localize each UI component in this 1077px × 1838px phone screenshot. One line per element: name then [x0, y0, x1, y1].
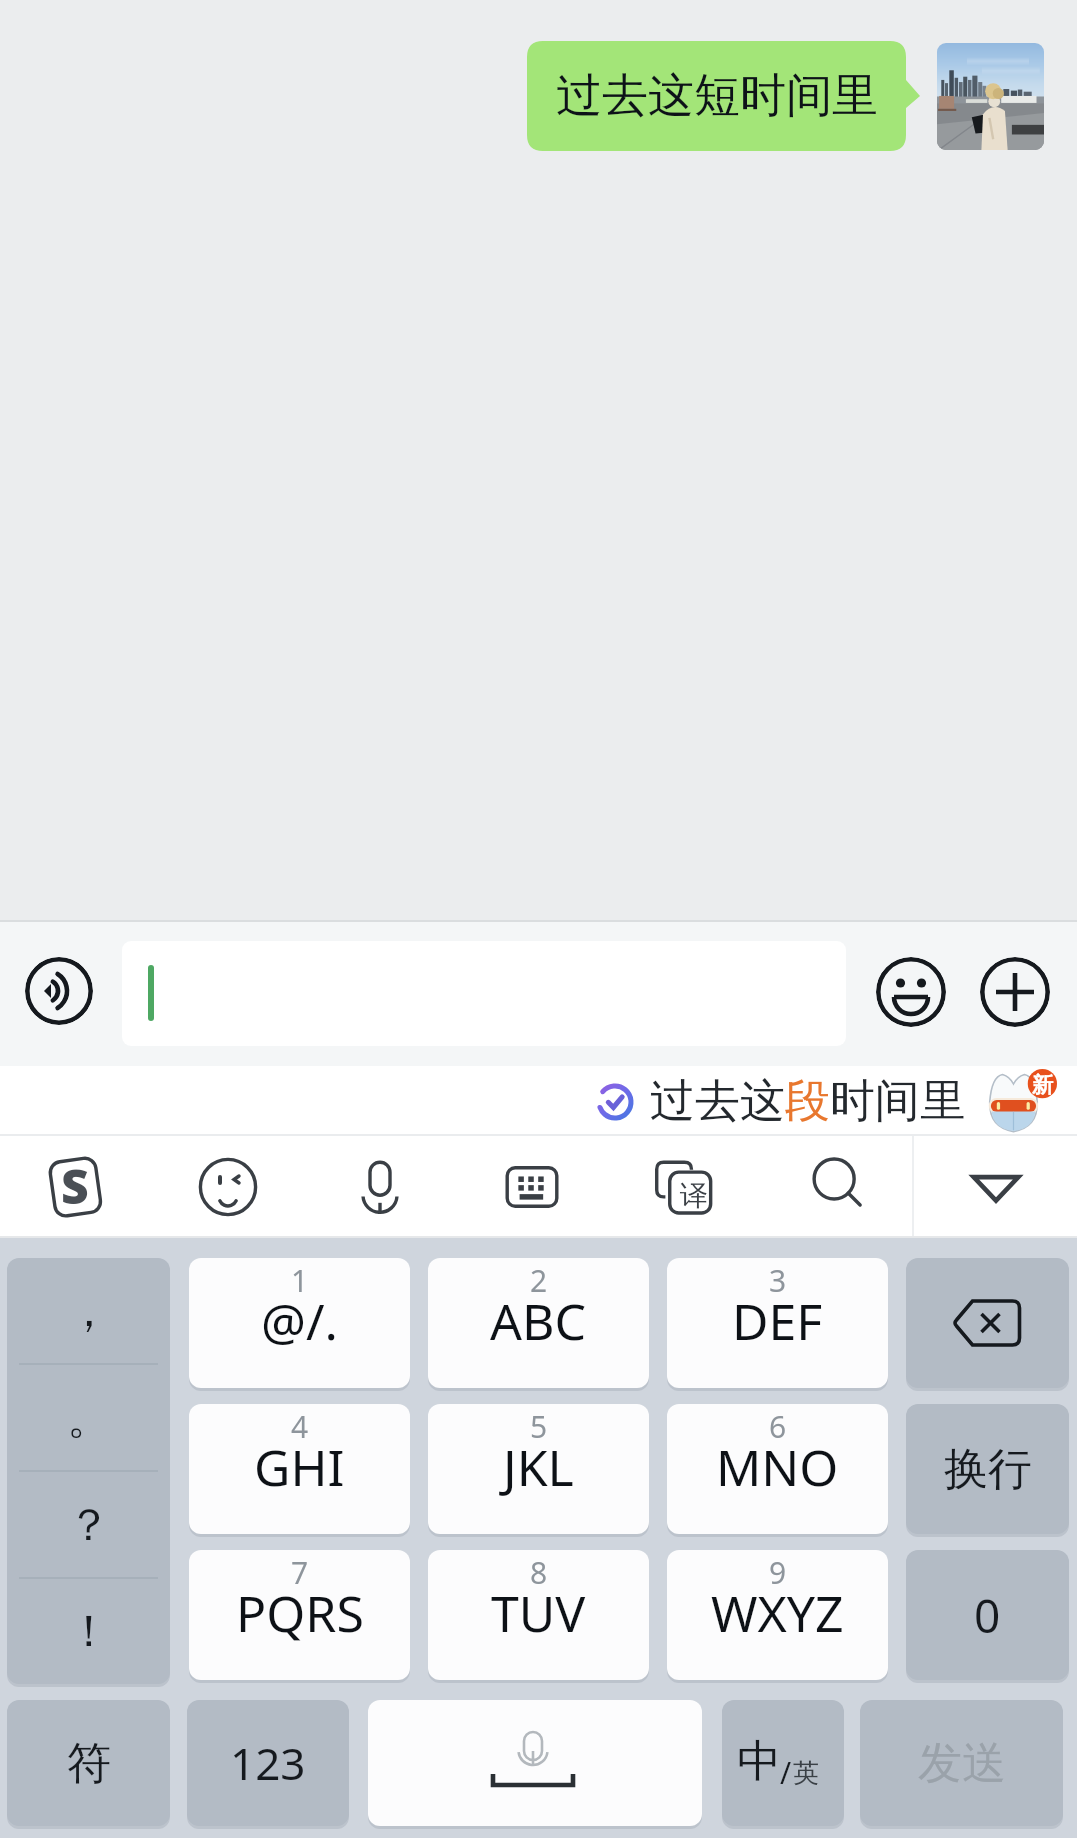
button[interactable]: 过去这 — [588, 1073, 971, 1130]
button[interactable]: 发送 — [860, 1700, 1063, 1826]
staticText: 新 — [1032, 1072, 1053, 1098]
button[interactable]: 1 @/. — [189, 1258, 410, 1388]
staticText: 5 — [530, 1406, 548, 1447]
staticText: JKL — [503, 1433, 574, 1501]
staticText: 换行 — [944, 1442, 1032, 1497]
button[interactable]: mic — [304, 1136, 456, 1238]
staticText: 。 — [67, 1391, 111, 1446]
button[interactable]: sogou — [0, 1136, 152, 1238]
staticText: 3 — [769, 1260, 787, 1301]
staticText: 英 — [793, 1757, 819, 1790]
staticText: 0 — [974, 1584, 1001, 1647]
staticText: 时间里 — [830, 1073, 965, 1130]
staticText: 符 — [67, 1736, 111, 1791]
button[interactable]: 7 PQRS — [189, 1550, 410, 1680]
button[interactable]: More — [980, 957, 1050, 1027]
staticText: ABC — [490, 1287, 587, 1355]
button[interactable]: Voice input — [25, 957, 93, 1025]
button[interactable]: 4 GHI — [189, 1404, 410, 1534]
staticText: GHI — [254, 1433, 345, 1501]
staticText: 8 — [530, 1552, 548, 1593]
button[interactable]: 中/英 — [722, 1700, 844, 1826]
button[interactable]: Avatar — [937, 43, 1044, 150]
staticText: S — [61, 1153, 89, 1218]
staticText: @/. — [261, 1287, 338, 1355]
button[interactable]: 8 TUV — [428, 1550, 649, 1680]
button[interactable]: Emoji — [876, 957, 946, 1027]
button[interactable]: face — [152, 1136, 304, 1238]
button[interactable]: 0 — [906, 1550, 1069, 1680]
staticText: 1 — [291, 1260, 309, 1301]
staticText: PQRS — [236, 1579, 364, 1647]
staticText: 发送 — [918, 1736, 1006, 1791]
button[interactable]: 123 — [187, 1700, 349, 1826]
button[interactable]: 6 MNO — [667, 1404, 888, 1534]
button[interactable]: Hide keyboard — [914, 1136, 1077, 1238]
staticText: WXYZ — [711, 1579, 844, 1647]
button[interactable]: 过去这短时间里 — [527, 41, 920, 151]
staticText: 4 — [291, 1406, 309, 1447]
staticText: 译 — [680, 1178, 708, 1213]
button[interactable]: 9 WXYZ — [667, 1550, 888, 1680]
button[interactable]: 5 JKL — [428, 1404, 649, 1534]
button[interactable]: Punctuation — [7, 1258, 170, 1684]
staticText: 2 — [530, 1260, 548, 1301]
button[interactable]: search — [760, 1136, 912, 1238]
button[interactable]: Backspace — [906, 1258, 1069, 1388]
button[interactable]: 3 DEF — [667, 1258, 888, 1388]
button[interactable]: 换行 — [906, 1404, 1069, 1534]
staticText: 过去这 — [650, 1073, 785, 1130]
staticText: / — [780, 1752, 792, 1793]
staticText: 123 — [230, 1733, 306, 1793]
staticText: 段 — [785, 1073, 830, 1130]
staticText: DEF — [732, 1287, 823, 1355]
staticText: 9 — [769, 1552, 787, 1593]
staticText: ！ — [67, 1604, 111, 1659]
button[interactable] — [122, 941, 846, 1046]
staticText: 7 — [291, 1552, 309, 1593]
staticText: 6 — [769, 1406, 787, 1447]
button[interactable]: Space — [368, 1700, 702, 1826]
staticText: 过去这短时间里 — [556, 67, 878, 125]
staticText: TUV — [491, 1579, 586, 1647]
button[interactable]: 2 ABC — [428, 1258, 649, 1388]
staticText: ， — [67, 1284, 111, 1339]
staticText: MNO — [716, 1433, 839, 1501]
staticText: ？ — [67, 1498, 111, 1553]
staticText: 中 — [737, 1734, 781, 1789]
button[interactable]: Emoji pack — [989, 1067, 1057, 1135]
button[interactable]: kbd — [456, 1136, 608, 1238]
button[interactable]: trans — [608, 1136, 760, 1238]
button[interactable]: 符 — [7, 1700, 170, 1826]
